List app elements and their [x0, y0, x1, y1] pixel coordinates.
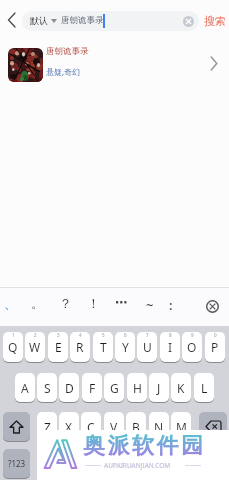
staticText: 默认 — [30, 15, 48, 26]
staticText: L — [201, 380, 208, 396]
staticText: N — [154, 419, 164, 435]
staticText: Z — [44, 419, 51, 435]
button[interactable]: 、 — [4, 295, 17, 311]
button[interactable] — [0, 40, 229, 90]
button[interactable]: ?123 — [3, 449, 30, 478]
button[interactable]: U — [137, 332, 157, 362]
staticText: 0 — [214, 332, 217, 338]
button[interactable]: K — [171, 373, 191, 402]
button[interactable]: E — [48, 332, 68, 362]
button[interactable]: F — [82, 373, 102, 402]
button[interactable]: N — [149, 412, 169, 441]
button[interactable]: ⋯ — [115, 295, 128, 310]
button[interactable] — [3, 412, 30, 441]
button[interactable]: ？ — [59, 295, 72, 311]
staticText: G — [110, 380, 119, 396]
button[interactable]: 。 — [31, 295, 44, 311]
staticText: P — [211, 339, 219, 355]
button[interactable] — [59, 449, 167, 478]
button[interactable]: I — [160, 332, 180, 362]
staticText: Y — [122, 339, 129, 355]
staticText: H — [133, 380, 142, 396]
button[interactable]: ~ — [146, 296, 154, 314]
staticText: T — [100, 339, 107, 355]
staticText: 5 — [102, 332, 105, 338]
staticText: ?123 — [8, 458, 26, 469]
staticText: 唐朝诡事录 — [46, 46, 89, 57]
button[interactable]: S — [37, 373, 57, 402]
button[interactable] — [206, 300, 219, 313]
staticText: 6 — [124, 332, 127, 338]
staticText: 唐朝诡事录 — [61, 15, 104, 26]
button[interactable]: 搜索 — [204, 14, 226, 28]
button[interactable]: Y — [115, 332, 135, 362]
staticText: 悬疑,奇幻 — [46, 66, 81, 77]
staticText: , — [45, 456, 49, 472]
button[interactable]: , — [37, 449, 57, 478]
staticText: J — [157, 380, 161, 396]
button[interactable]: O — [182, 332, 202, 362]
button[interactable]: : — [169, 296, 173, 314]
staticText: A — [21, 380, 29, 396]
button[interactable]: G — [104, 373, 124, 402]
staticText: F — [89, 380, 96, 396]
button[interactable] — [183, 16, 194, 27]
button[interactable] — [170, 449, 226, 478]
staticText: W — [29, 339, 41, 355]
button[interactable]: V — [104, 412, 124, 441]
button[interactable]: L — [194, 373, 214, 402]
staticText: I — [168, 339, 173, 355]
button[interactable]: T — [93, 332, 113, 362]
button[interactable] — [199, 412, 227, 441]
button[interactable]: Q — [3, 332, 23, 362]
staticText: 1 — [12, 332, 15, 338]
button[interactable]: C — [81, 412, 101, 441]
button[interactable]: W — [25, 332, 45, 362]
button[interactable]: P — [205, 332, 225, 362]
staticText: 2 — [34, 332, 37, 338]
staticText: O — [187, 339, 197, 355]
staticText: 9 — [191, 332, 194, 338]
button[interactable]: R — [70, 332, 90, 362]
staticText: V — [110, 419, 118, 435]
staticText: D — [65, 380, 74, 396]
staticText: 8 — [169, 332, 172, 338]
staticText: K — [177, 380, 185, 396]
staticText: R — [76, 339, 84, 355]
staticText: B — [132, 419, 140, 435]
button[interactable]: B — [126, 412, 146, 441]
button[interactable]: H — [127, 373, 147, 402]
staticText: AUPAIRUANJIAN.COM — [104, 461, 171, 470]
button[interactable]: 默认 — [22, 11, 199, 31]
button[interactable]: D — [59, 373, 79, 402]
staticText: E — [55, 339, 62, 355]
staticText: M — [176, 419, 187, 435]
staticText: X — [65, 419, 73, 435]
button[interactable]: X — [59, 412, 79, 441]
button[interactable] — [7, 13, 17, 27]
button[interactable]: J — [149, 373, 169, 402]
staticText: 奥派软件园 — [83, 432, 206, 460]
staticText: 7 — [146, 332, 149, 338]
button[interactable]: M — [171, 412, 191, 441]
staticText: 3 — [57, 332, 60, 338]
button[interactable]: A — [15, 373, 35, 402]
staticText: S — [44, 380, 51, 396]
staticText: C — [87, 419, 95, 435]
staticText: U — [143, 339, 152, 355]
button[interactable]: ！ — [87, 295, 100, 311]
staticText: Q — [8, 339, 18, 355]
button[interactable]: Z — [37, 412, 57, 441]
staticText: 4 — [79, 332, 82, 338]
